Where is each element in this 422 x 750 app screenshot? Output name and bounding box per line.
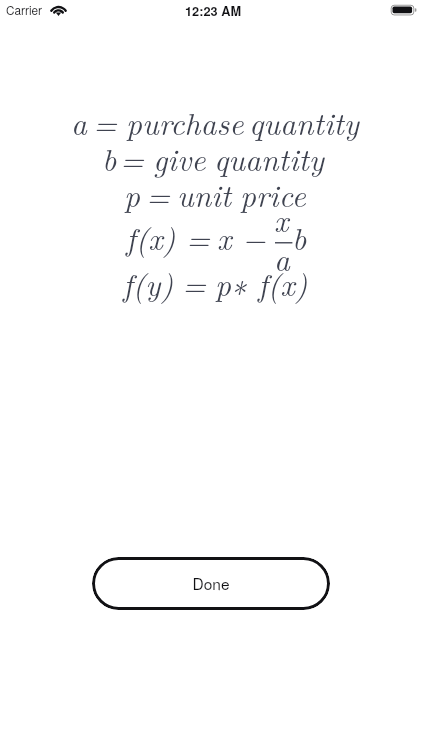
staticText: Done <box>192 572 230 594</box>
staticText: f(y) <box>123 261 174 305</box>
staticText: = <box>120 136 144 180</box>
staticText: p <box>124 172 140 216</box>
staticText: x <box>274 197 289 241</box>
staticText: ∗ <box>231 261 247 305</box>
staticText: b <box>292 215 307 259</box>
staticText: − <box>242 215 266 259</box>
staticText: f(x) <box>126 215 176 259</box>
staticText: purchase <box>126 100 244 144</box>
staticText: quantity <box>249 100 359 144</box>
staticText: f(x) <box>258 261 308 305</box>
staticText: = <box>182 261 206 305</box>
staticText: b <box>102 136 117 180</box>
staticText: a <box>71 100 87 144</box>
staticText: Carrier <box>6 1 43 18</box>
staticText: = <box>186 215 210 259</box>
staticText: x <box>217 215 232 259</box>
staticText: 12:23 AM <box>185 2 242 20</box>
button[interactable]: Done <box>92 557 330 610</box>
staticText: quantity <box>214 136 324 180</box>
staticText: = <box>146 172 170 216</box>
staticText: = <box>93 100 117 144</box>
staticText: a <box>274 236 290 280</box>
staticText: unit <box>177 172 232 216</box>
staticText: give <box>153 136 206 180</box>
staticText: p <box>215 261 231 305</box>
staticText: price <box>240 172 306 216</box>
